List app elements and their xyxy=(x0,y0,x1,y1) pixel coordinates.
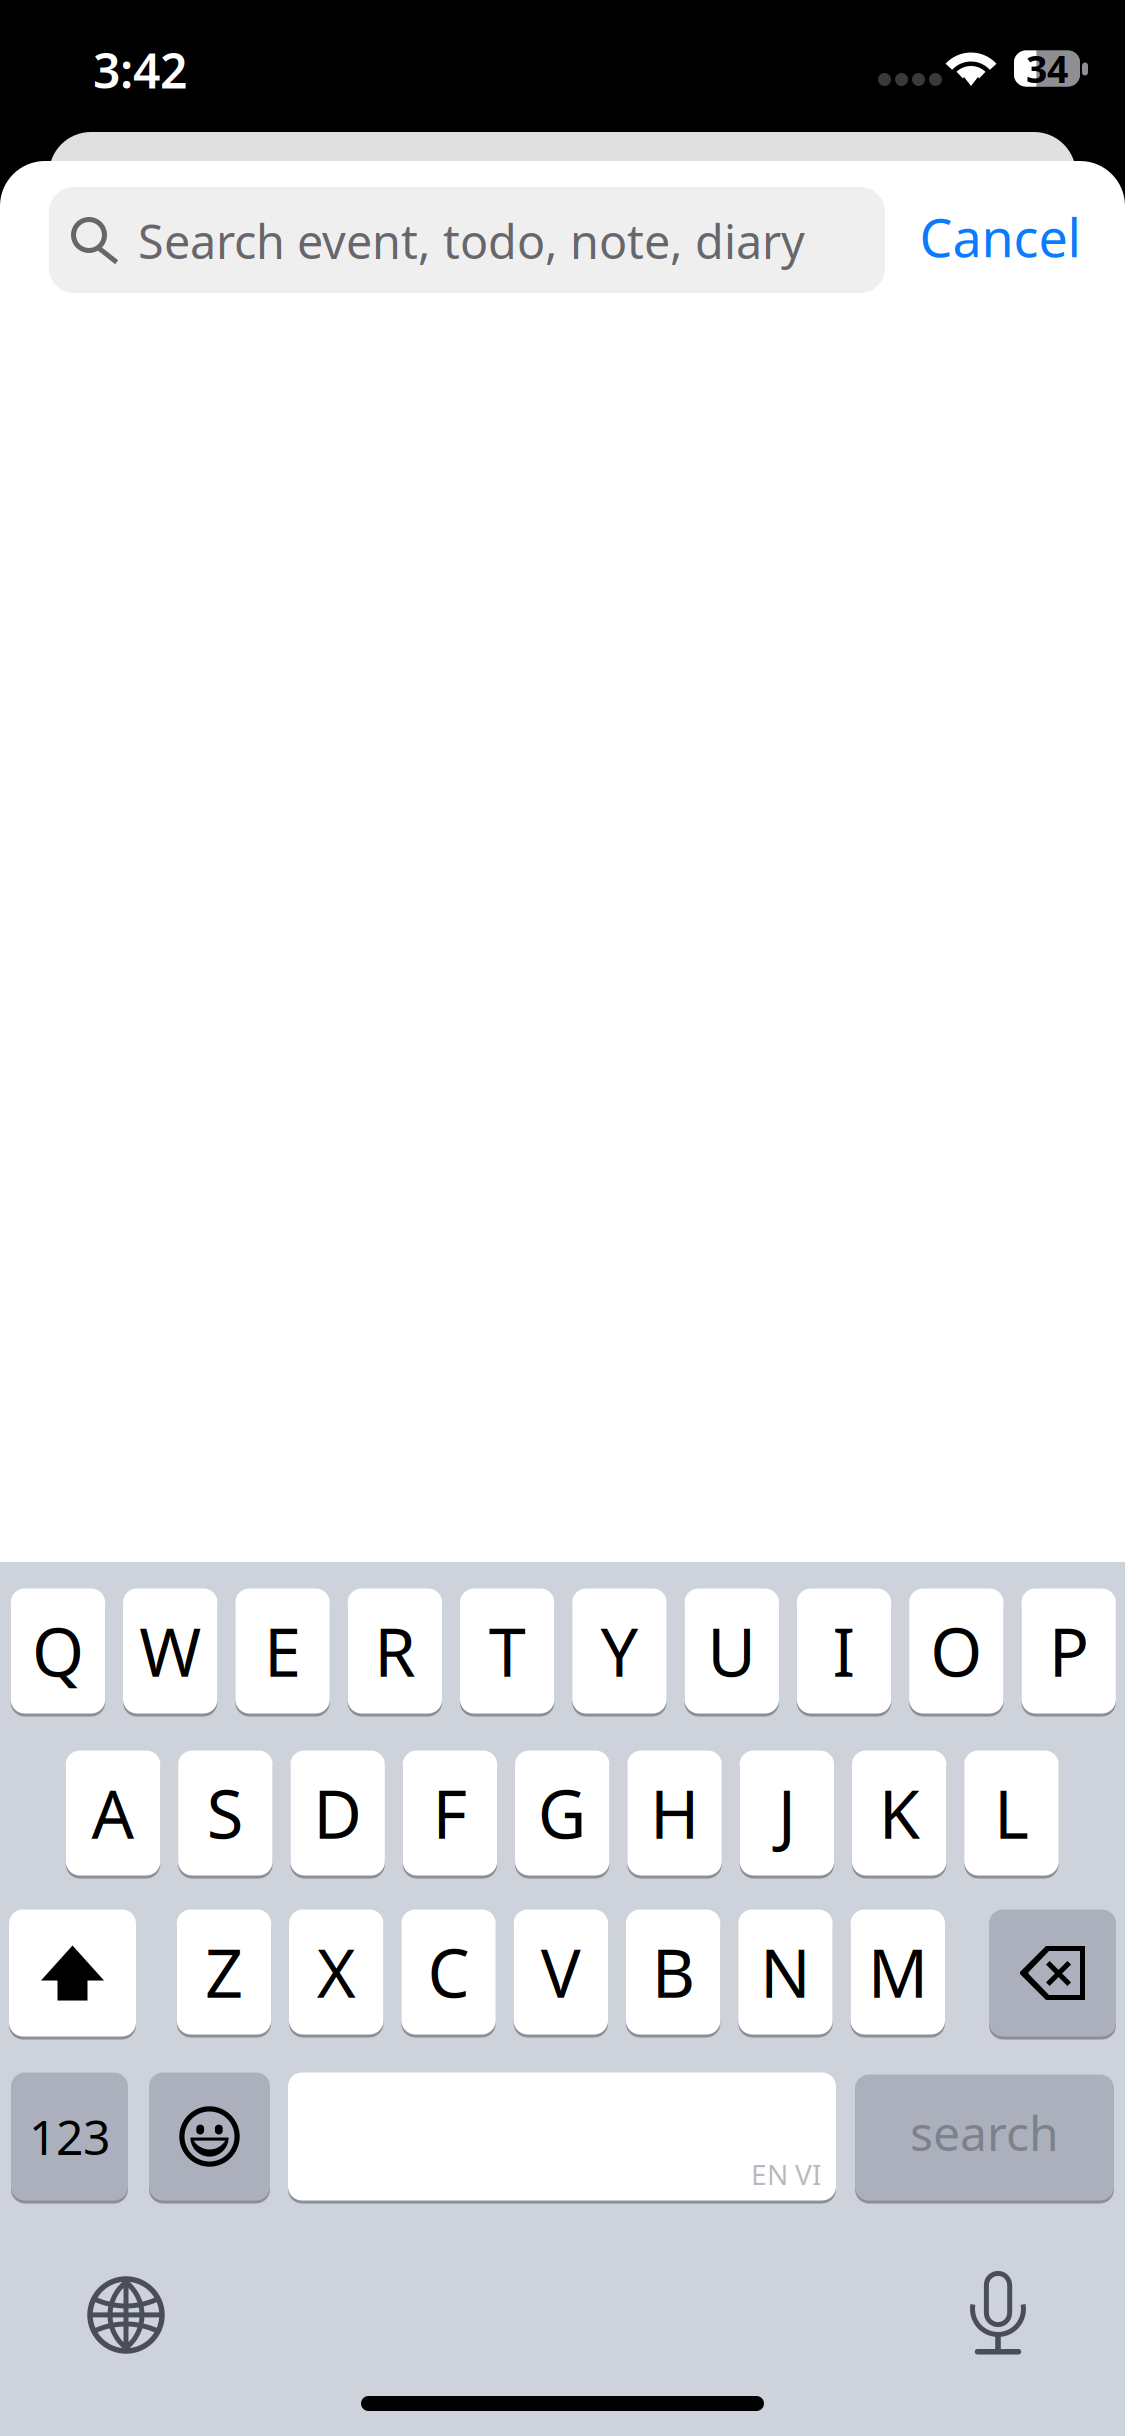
button[interactable]: W xyxy=(123,1587,217,1715)
button[interactable]: O xyxy=(909,1587,1004,1715)
button[interactable]: I xyxy=(797,1587,891,1715)
button[interactable]: Delete xyxy=(989,1908,1116,2038)
button[interactable]: G xyxy=(515,1749,609,1877)
button[interactable]: Q xyxy=(11,1587,105,1715)
button[interactable]: space xyxy=(288,2071,836,2202)
staticText: search xyxy=(910,2101,1059,2164)
staticText: H xyxy=(650,1769,699,1857)
button[interactable]: M xyxy=(850,1908,945,2036)
button[interactable]: U xyxy=(684,1587,779,1715)
staticText: 34 xyxy=(1026,44,1068,93)
staticText: J xyxy=(778,1769,796,1857)
staticText: A xyxy=(91,1769,134,1857)
staticText: F xyxy=(432,1769,467,1857)
staticText: M xyxy=(868,1928,928,2016)
button[interactable]: H xyxy=(627,1749,722,1877)
staticText: B xyxy=(652,1928,695,2016)
button[interactable]: K xyxy=(852,1749,946,1877)
staticText: T xyxy=(489,1607,526,1695)
staticText: 123 xyxy=(29,2105,110,2168)
button[interactable]: L xyxy=(964,1749,1059,1877)
staticText: Q xyxy=(32,1607,84,1695)
staticText: Search event, todo, note, diary xyxy=(138,210,805,272)
button[interactable]: Next keyboard xyxy=(87,2276,165,2354)
button[interactable]: B xyxy=(626,1908,720,2036)
button[interactable]: P xyxy=(1021,1587,1116,1715)
button[interactable]: Dictation xyxy=(964,2265,1032,2357)
staticText: E xyxy=(264,1607,301,1695)
button[interactable]: A xyxy=(66,1749,160,1877)
button[interactable]: Cancel xyxy=(905,184,1095,290)
button[interactable]: S xyxy=(178,1749,273,1877)
staticText: P xyxy=(1049,1607,1089,1695)
button[interactable]: T xyxy=(460,1587,554,1715)
staticText: 3:42 xyxy=(93,38,187,102)
staticText: C xyxy=(427,1928,469,2016)
staticText: L xyxy=(994,1769,1029,1857)
button[interactable]: F xyxy=(403,1749,497,1877)
button[interactable]: Shift xyxy=(9,1908,136,2038)
staticText: D xyxy=(313,1769,362,1857)
staticText: S xyxy=(207,1769,244,1857)
staticText: K xyxy=(879,1769,920,1857)
button[interactable]: Y xyxy=(572,1587,667,1715)
button[interactable]: R xyxy=(348,1587,442,1715)
button[interactable]: E xyxy=(235,1587,330,1715)
button[interactable]: search xyxy=(855,2073,1114,2202)
button[interactable]: Emoji xyxy=(149,2071,270,2202)
staticText: R xyxy=(374,1607,415,1695)
button[interactable]: X xyxy=(289,1908,383,2036)
staticText: O xyxy=(930,1607,982,1695)
staticText: W xyxy=(139,1607,201,1695)
staticText: G xyxy=(538,1769,587,1857)
staticText: U xyxy=(707,1607,756,1695)
staticText: Cancel xyxy=(919,202,1080,272)
button[interactable]: D xyxy=(290,1749,385,1877)
staticText: I xyxy=(833,1607,856,1695)
button[interactable]: 123 xyxy=(11,2071,128,2202)
button[interactable]: V xyxy=(514,1908,608,2036)
button[interactable]: C xyxy=(401,1908,496,2036)
button[interactable]: N xyxy=(738,1908,833,2036)
staticText: V xyxy=(541,1928,581,2016)
button[interactable]: Z xyxy=(177,1908,271,2036)
staticText: Y xyxy=(600,1607,638,1695)
staticText: Z xyxy=(205,1928,243,2016)
staticText: X xyxy=(317,1928,356,2016)
button[interactable]: J xyxy=(740,1749,834,1877)
staticText: EN VI xyxy=(751,2155,821,2193)
staticText: N xyxy=(760,1928,811,2016)
